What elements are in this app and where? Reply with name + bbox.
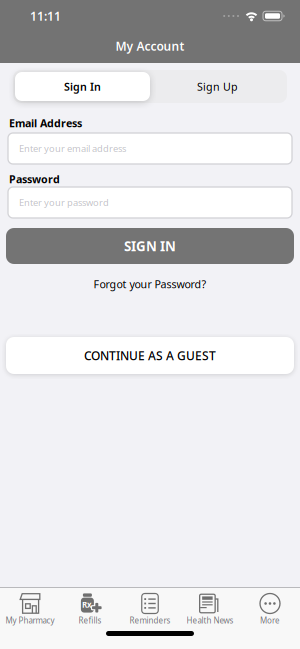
staticText: Sign In [64,79,101,94]
staticText: Sign Up [197,79,238,94]
button[interactable]: Sign Up [150,72,285,101]
button[interactable]: Sign In [15,72,150,101]
button[interactable]: CONTINUE AS A GUEST [6,337,294,374]
staticText: Rx [82,599,92,610]
button[interactable]: Reminders [120,593,180,627]
staticText: Email Address [9,116,82,130]
staticText: Reminders [129,615,170,626]
button[interactable]: More [240,593,300,627]
staticText: Enter your email address [19,142,126,155]
staticText: More [260,615,280,626]
staticText: SIGN IN [124,237,176,255]
staticText: My Pharmacy [5,615,54,626]
button[interactable]: Forgot your Password? [93,276,206,292]
button[interactable]: Rx [60,593,120,627]
staticText: My Account [115,38,184,54]
staticText: 11:11 [30,8,61,24]
staticText: Forgot your Password? [93,277,206,291]
button[interactable]: Health News [180,593,240,627]
button[interactable]: SIGN IN [6,228,294,264]
staticText: Password [9,172,60,186]
staticText: Health News [186,615,233,626]
staticText: CONTINUE AS A GUEST [84,347,216,363]
button[interactable]: My Pharmacy [0,593,60,627]
staticText: Refills [78,615,101,626]
staticText: Enter your password [19,196,109,209]
